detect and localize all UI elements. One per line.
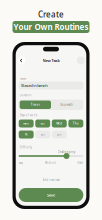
staticText: Create (38, 9, 64, 20)
button[interactable]: Tue (35, 119, 50, 127)
button[interactable]: Thu (68, 119, 83, 127)
staticText: Sun (57, 133, 62, 136)
staticText: Difficulty (20, 145, 32, 149)
staticText: Name (20, 77, 27, 80)
button[interactable]: Wed (52, 119, 67, 127)
button[interactable]: Stopwatch (51, 100, 82, 109)
button[interactable]: Back (17, 56, 25, 64)
staticText: Your Own Routines (13, 22, 88, 32)
staticText: Sat (41, 133, 45, 136)
staticText: Mon (23, 122, 29, 125)
button[interactable]: Account (77, 56, 85, 64)
button[interactable]: Save (19, 188, 83, 202)
staticText: Based in bench (21, 83, 47, 88)
staticText: Timer (31, 103, 40, 106)
staticText: Hard (77, 161, 83, 164)
staticText: Duration (20, 93, 32, 97)
staticText: Save (47, 192, 55, 198)
button[interactable]: Mon (19, 119, 34, 127)
staticText: New Task (42, 58, 59, 63)
staticText: Add new task (42, 178, 59, 182)
staticText: Challenging (57, 150, 75, 154)
button[interactable]: Sat (35, 130, 50, 138)
button[interactable]: Sun (52, 130, 67, 138)
staticText: Fri (25, 133, 28, 136)
staticText: Days of week (20, 113, 37, 117)
staticText: Wed (56, 122, 62, 125)
staticText: Thu (73, 122, 79, 125)
staticText: Stopwatch (60, 103, 73, 106)
button[interactable]: Timer (20, 100, 51, 109)
staticText: Tue (40, 122, 45, 125)
button[interactable]: Fri (19, 130, 34, 138)
staticText: Medium (44, 161, 55, 164)
staticText: Easy (19, 161, 23, 164)
